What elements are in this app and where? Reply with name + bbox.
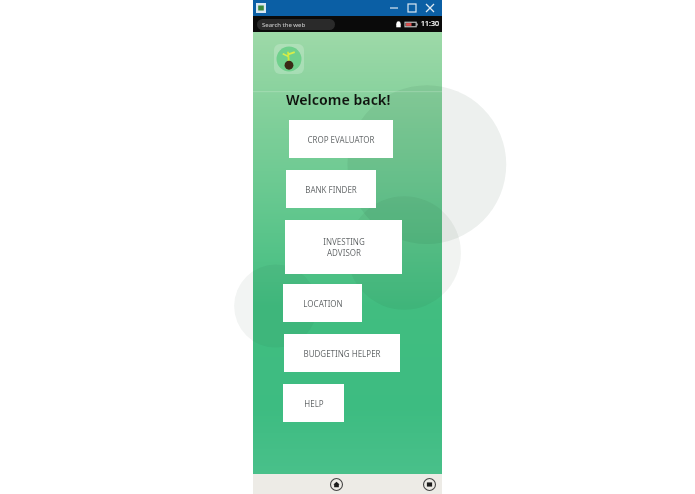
staticText: 11:30: [421, 19, 439, 29]
button[interactable]: App icon: [274, 44, 304, 74]
button[interactable]: INVESTING ADVISOR: [285, 220, 402, 274]
button[interactable]: Home: [327, 475, 345, 493]
staticText: BUDGETING HELPER: [303, 348, 381, 359]
staticText: CROP EVALUATOR: [307, 134, 375, 145]
button[interactable]: Minimise: [385, 1, 403, 15]
staticText: Welcome back!: [286, 90, 391, 109]
staticText: INVESTING ADVISOR: [323, 236, 365, 258]
button[interactable]: LOCATION: [283, 284, 362, 322]
staticText: HELP: [304, 398, 324, 409]
button[interactable]: BUDGETING HELPER: [284, 334, 400, 372]
button[interactable]: CROP EVALUATOR: [289, 120, 393, 158]
button[interactable]: Recent apps: [420, 475, 438, 493]
staticText: Search the web: [262, 21, 306, 29]
button[interactable]: HELP: [283, 384, 344, 422]
button[interactable]: Search the web: [257, 19, 335, 30]
button[interactable]: Close: [421, 1, 439, 15]
staticText: BANK FINDER: [305, 184, 357, 195]
button[interactable]: Maximise: [403, 1, 421, 15]
staticText: LOCATION: [303, 298, 343, 309]
button[interactable]: BANK FINDER: [286, 170, 376, 208]
